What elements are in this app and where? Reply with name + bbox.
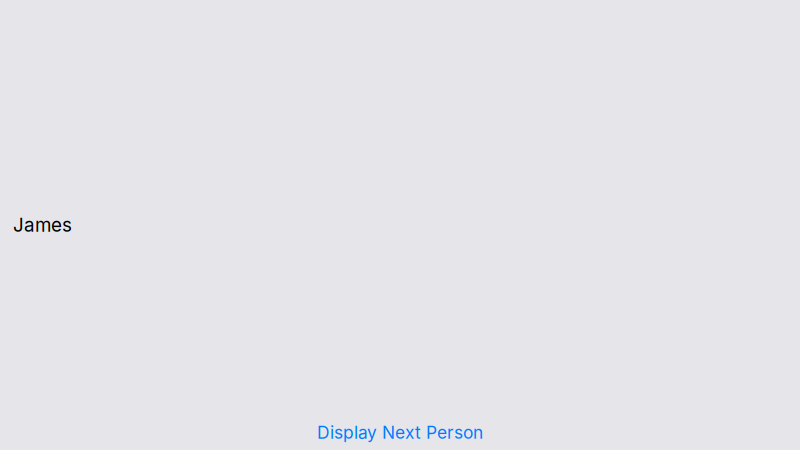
staticText: James [13,214,72,236]
button[interactable]: Display Next Person [307,418,493,447]
staticText: Display Next Person [317,422,483,443]
